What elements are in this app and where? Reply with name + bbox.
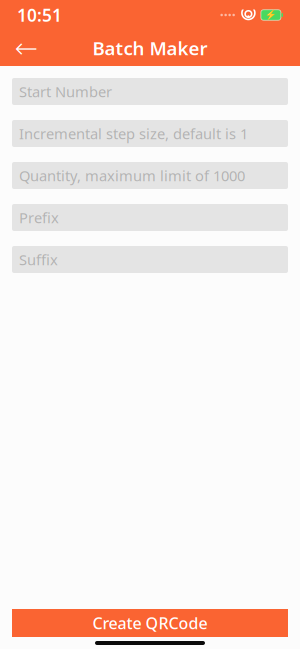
staticText: ← xyxy=(14,32,37,64)
staticText: Prefix xyxy=(19,208,59,227)
button[interactable]: Start Number xyxy=(12,78,288,105)
staticText: Suffix xyxy=(19,250,58,269)
button[interactable]: Create QRCode xyxy=(12,609,288,637)
button[interactable]: Suffix xyxy=(12,246,288,273)
staticText: Start Number xyxy=(19,82,112,101)
staticText: ⚡ xyxy=(265,10,277,20)
button[interactable]: Back xyxy=(7,31,45,65)
staticText: Batch Maker xyxy=(92,36,207,60)
button[interactable]: Quantity, maximum limit of 1000 xyxy=(12,162,288,189)
staticText: Quantity, maximum limit of 1000 xyxy=(19,166,245,185)
button[interactable]: Incremental step size, default is 1 xyxy=(12,120,288,147)
staticText: 10:51 xyxy=(17,3,62,26)
button[interactable]: Prefix xyxy=(12,204,288,231)
staticText: Incremental step size, default is 1 xyxy=(19,124,248,143)
staticText: Create QRCode xyxy=(92,612,207,634)
